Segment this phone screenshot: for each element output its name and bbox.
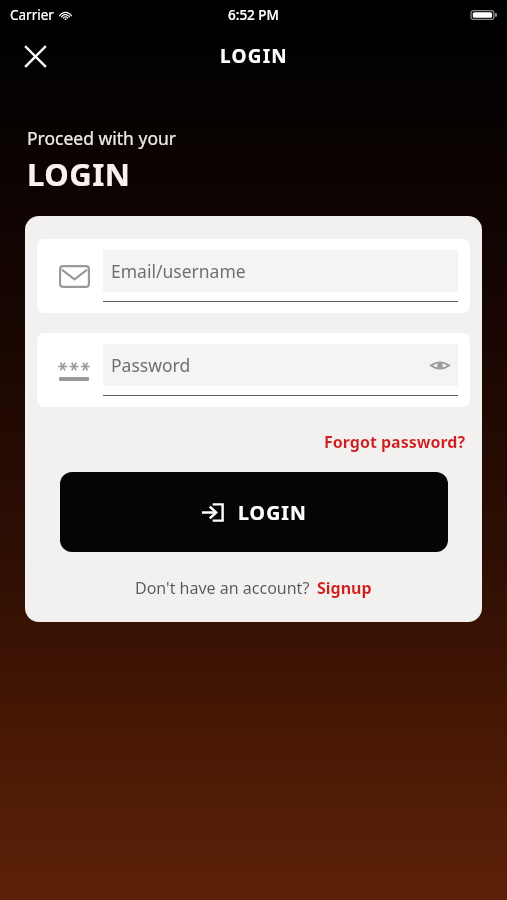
staticText: Proceed with your [27,126,177,150]
staticText: Carrier [10,6,54,24]
staticText: LOGIN [27,153,131,195]
staticText: LOGIN [238,499,307,526]
button[interactable]: Email/username [37,239,470,313]
button[interactable]: Signup [317,577,372,599]
staticText: LOGIN [220,43,288,69]
button[interactable]: Close [14,35,56,77]
button[interactable]: Password [37,333,470,407]
staticText: Don't have an account? [135,577,310,599]
button[interactable]: LOGIN [60,472,448,552]
staticText: Email/username [111,259,452,283]
staticText: 6:52 PM [228,6,279,24]
button[interactable]: Forgot password? [320,428,470,456]
staticText: Password [111,353,428,377]
button[interactable]: Show password [428,353,452,377]
staticText: Forgot password? [324,431,466,453]
staticText: Signup [317,577,372,599]
